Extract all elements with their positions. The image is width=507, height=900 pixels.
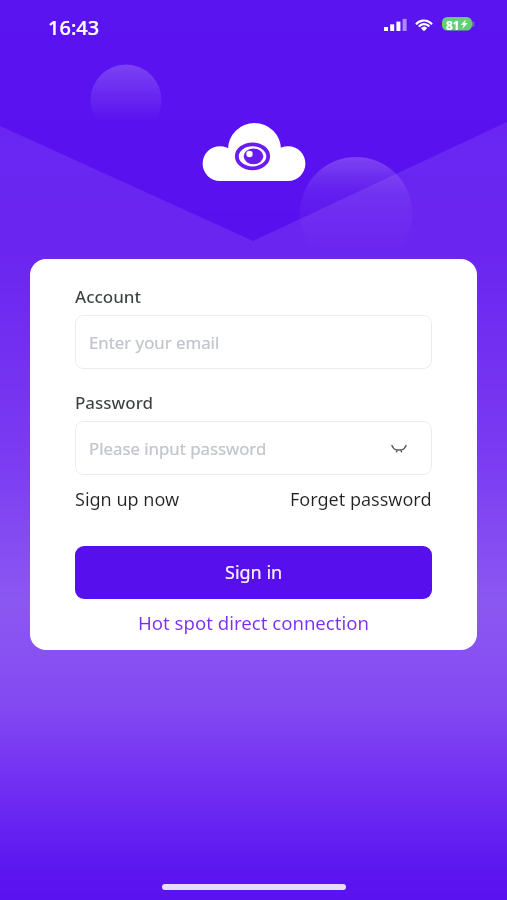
button[interactable]: Forget password (290, 487, 432, 512)
staticText: 16:43 (48, 14, 100, 41)
staticText: Account (75, 285, 142, 308)
button[interactable]: Enter your email (75, 315, 432, 369)
staticText: Forget password (290, 487, 432, 512)
button[interactable]: Sign up now (75, 487, 180, 512)
button[interactable]: Show password (391, 442, 407, 455)
staticText: Password (75, 391, 154, 414)
staticText: Hot spot direct connection (138, 610, 370, 635)
staticText: Sign up now (75, 487, 180, 512)
staticText: Please input password (89, 437, 267, 460)
staticText: Sign in (225, 560, 283, 585)
button[interactable]: Hot spot direct connection (30, 610, 477, 635)
button[interactable]: Please input password (75, 421, 432, 475)
button[interactable]: Sign in (75, 546, 432, 599)
staticText: 81 (446, 17, 460, 31)
staticText: Enter your email (89, 331, 220, 354)
